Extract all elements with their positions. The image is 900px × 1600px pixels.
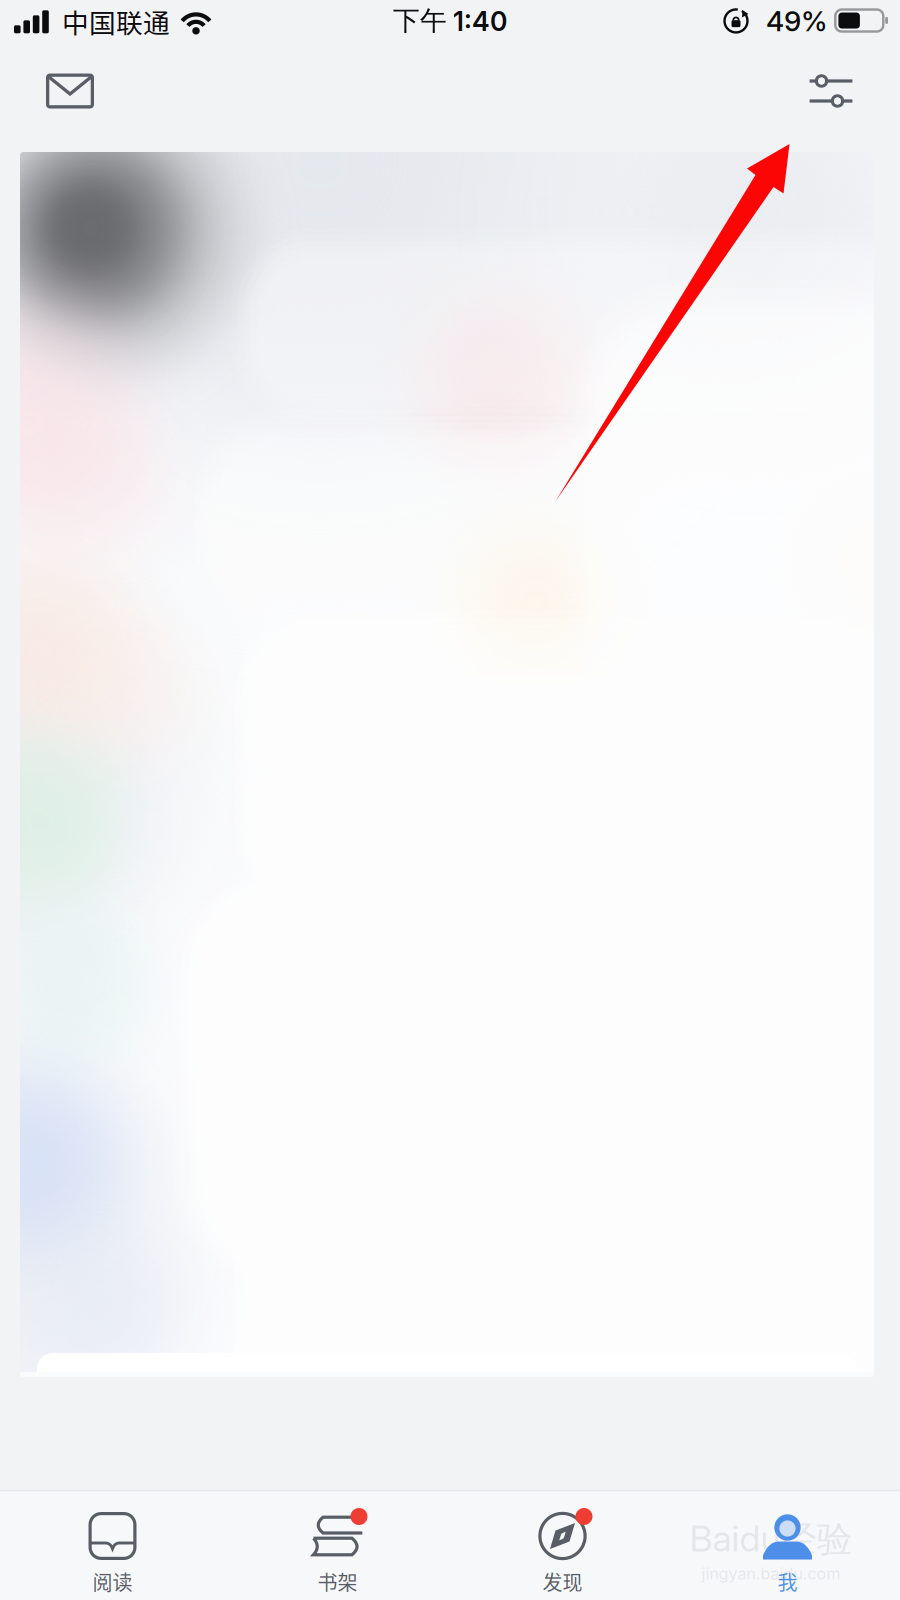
staticText: jingyan.baidu.com xyxy=(701,1564,840,1583)
staticText: 我 xyxy=(777,1567,797,1596)
button[interactable]: 书架 xyxy=(225,1490,450,1600)
button[interactable]: 发现 xyxy=(450,1490,675,1600)
staticText: Baidu经验 xyxy=(689,1516,852,1562)
staticText: 发现 xyxy=(542,1567,582,1596)
button[interactable]: 我 xyxy=(675,1490,900,1600)
staticText: 书架 xyxy=(317,1567,357,1596)
staticText: 下午 1:40 xyxy=(393,4,507,38)
staticText: 阅读 xyxy=(92,1567,132,1596)
button[interactable]: Messages xyxy=(22,60,118,122)
button[interactable]: Reading settings xyxy=(783,60,879,122)
button[interactable]: 阅读 xyxy=(0,1490,225,1600)
staticText: 中国联通 xyxy=(62,2,170,41)
staticText: 49% xyxy=(766,4,828,38)
